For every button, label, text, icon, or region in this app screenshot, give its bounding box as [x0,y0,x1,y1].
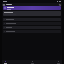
button[interactable] [3,26,61,29]
button[interactable] [3,11,61,16]
button[interactable] [3,22,61,25]
button[interactable]: Profile [56,60,61,64]
button[interactable] [3,30,61,33]
button[interactable]: Home [3,60,8,64]
button[interactable]: Library [30,60,35,64]
button[interactable] [3,18,61,21]
button[interactable]: Search [59,4,61,6]
button[interactable] [3,6,61,10]
